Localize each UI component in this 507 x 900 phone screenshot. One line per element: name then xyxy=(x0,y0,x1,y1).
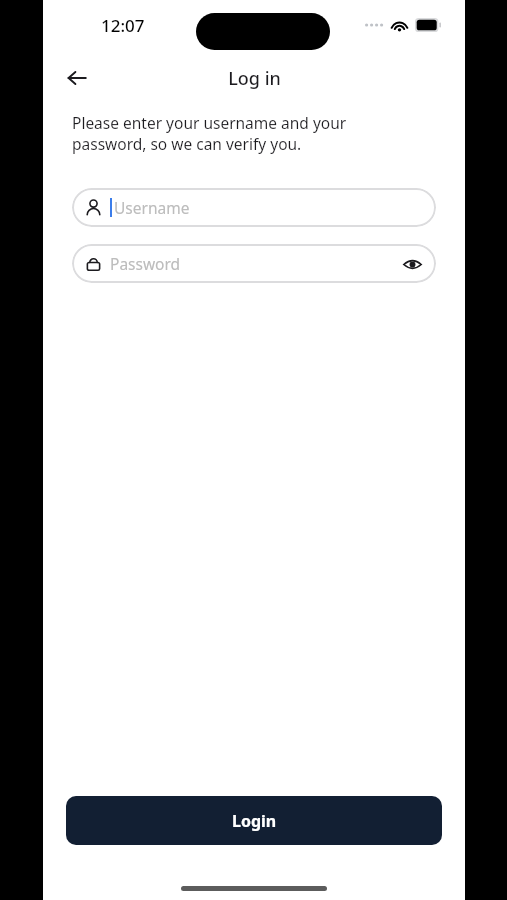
button[interactable]: Back xyxy=(60,61,94,95)
staticText: Password xyxy=(110,253,181,274)
button[interactable]: Login xyxy=(66,796,442,845)
staticText: Please enter your username and your pass… xyxy=(72,112,347,155)
staticText: Log in xyxy=(228,66,281,91)
staticText: 12:07 xyxy=(101,14,145,37)
staticText: Login xyxy=(232,810,277,832)
button[interactable]: Password xyxy=(72,244,436,283)
staticText: Username xyxy=(114,197,190,218)
button[interactable]: Show password xyxy=(401,253,423,275)
button[interactable]: Username xyxy=(72,188,436,227)
